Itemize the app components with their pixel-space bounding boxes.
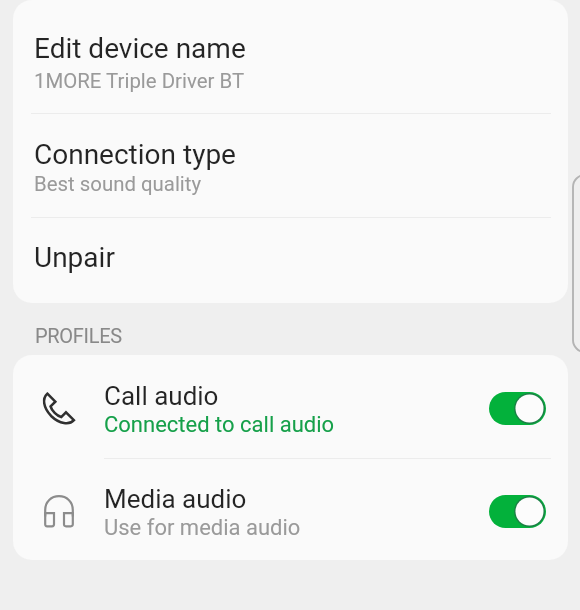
staticText: Unpair [34, 241, 115, 274]
button[interactable]: Unpair [13, 218, 568, 303]
staticText: Call audio [104, 381, 219, 411]
staticText: Media audio [104, 484, 247, 514]
staticText: Use for media audio [104, 515, 301, 541]
staticText: Edit device name [34, 32, 246, 65]
staticText: 1MORE Triple Driver BT [34, 69, 245, 93]
staticText: Connection type [34, 138, 236, 171]
staticText: PROFILES [35, 324, 122, 347]
button[interactable]: Media audio [13, 459, 568, 560]
button[interactable]: Media audio toggle [489, 495, 546, 528]
button[interactable]: Edit device name [13, 0, 568, 113]
staticText: Best sound quality [34, 172, 202, 196]
staticText: Connected to call audio [104, 412, 335, 438]
button[interactable]: Call audio [13, 357, 568, 458]
button[interactable]: Connection type [13, 114, 568, 217]
button[interactable]: Call audio toggle [489, 392, 546, 425]
